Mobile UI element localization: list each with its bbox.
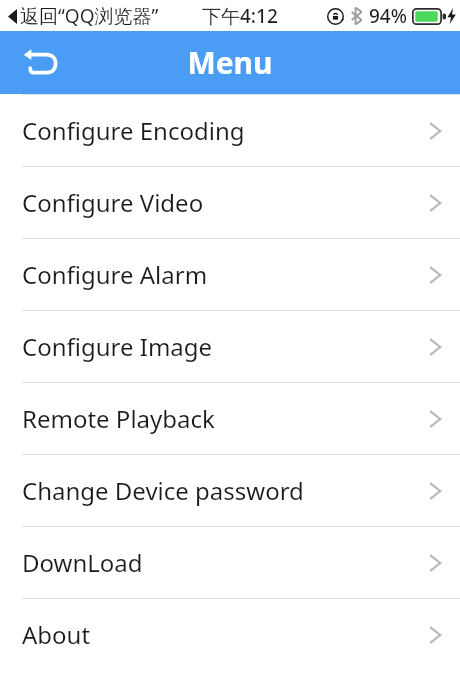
staticText: Remote Playback <box>22 402 215 435</box>
staticText: Configure Encoding <box>22 114 245 147</box>
staticText: Configure Image <box>22 330 213 363</box>
button[interactable]: Configure Video <box>0 167 460 238</box>
button[interactable]: DownLoad <box>0 527 460 598</box>
staticText: 94% <box>369 3 407 29</box>
staticText: Change Device password <box>22 474 304 507</box>
staticText: Configure Video <box>22 186 204 219</box>
button[interactable]: Configure Alarm <box>0 239 460 310</box>
button[interactable]: Back <box>14 35 70 91</box>
button[interactable]: Configure Encoding <box>0 95 460 166</box>
staticText: Configure Alarm <box>22 258 208 291</box>
button[interactable]: About <box>0 599 460 670</box>
button[interactable]: Change Device password <box>0 455 460 526</box>
button[interactable]: Remote Playback <box>0 383 460 454</box>
staticText: 下午4:12 <box>202 3 278 29</box>
staticText: About <box>22 618 91 651</box>
staticText: 返回“QQ浏览器” <box>20 3 159 29</box>
staticText: DownLoad <box>22 546 143 579</box>
button[interactable]: Configure Image <box>0 311 460 382</box>
staticText: Menu <box>187 42 273 83</box>
